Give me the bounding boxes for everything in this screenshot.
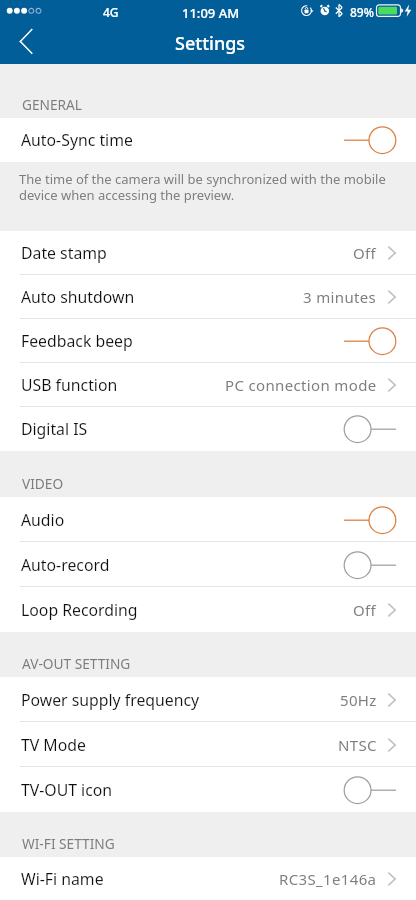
staticText: Auto shutdown [21, 286, 135, 308]
button[interactable]: Feedback beep [0, 319, 416, 363]
button[interactable]: Auto shutdown [0, 275, 416, 319]
button[interactable]: Digital IS off [344, 415, 396, 443]
button[interactable]: Auto-record off [344, 551, 396, 579]
staticText: Off [353, 600, 377, 620]
staticText: Auto-record [21, 554, 110, 576]
staticText: The time of the camera will be synchroni… [19, 170, 400, 204]
staticText: RC3S_1e146a [279, 869, 377, 889]
staticText: VIDEO [22, 474, 64, 493]
staticText: 3 minutes [303, 287, 377, 307]
staticText: Feedback beep [21, 330, 133, 352]
staticText: WI-FI SETTING [22, 834, 115, 853]
button[interactable]: Loop Recording [0, 587, 416, 632]
staticText: Off [353, 243, 377, 263]
button[interactable]: Audio [0, 497, 416, 542]
staticText: AV-OUT SETTING [22, 654, 131, 673]
staticText: NTSC [338, 735, 377, 755]
button[interactable]: Auto-Sync time on [344, 126, 396, 154]
staticText: GENERAL [22, 95, 83, 114]
button[interactable]: TV-OUT icon off [344, 776, 396, 804]
staticText: 11:09 AM [182, 4, 240, 22]
button[interactable]: Date stamp [0, 231, 416, 275]
button[interactable]: Back [0, 24, 52, 64]
button[interactable]: USB function [0, 363, 416, 407]
staticText: Wi-Fi name [21, 868, 104, 890]
staticText: TV Mode [21, 734, 86, 756]
staticText: 50Hz [340, 690, 377, 710]
button[interactable]: Auto-Sync time [0, 118, 416, 162]
button[interactable]: Digital IS [0, 407, 416, 451]
staticText: Settings [175, 31, 246, 56]
button[interactable]: Audio on [344, 506, 396, 534]
staticText: Power supply frequency [21, 689, 200, 711]
staticText: 4G [103, 4, 119, 20]
staticText: PC connection mode [225, 375, 377, 395]
staticText: USB function [21, 374, 118, 396]
staticText: Auto-Sync time [21, 129, 133, 151]
button[interactable]: TV Mode [0, 722, 416, 767]
button[interactable]: Wi-Fi name [0, 857, 416, 900]
button[interactable]: Feedback beep on [344, 327, 396, 355]
staticText: TV-OUT icon [21, 779, 113, 801]
staticText: 89% [350, 4, 374, 20]
staticText: Digital IS [21, 418, 88, 440]
button[interactable]: Power supply frequency [0, 677, 416, 722]
button[interactable]: TV-OUT icon [0, 767, 416, 812]
staticText: Audio [21, 509, 65, 531]
button[interactable]: Auto-record [0, 542, 416, 587]
staticText: Loop Recording [21, 599, 138, 621]
staticText: Date stamp [21, 242, 107, 264]
